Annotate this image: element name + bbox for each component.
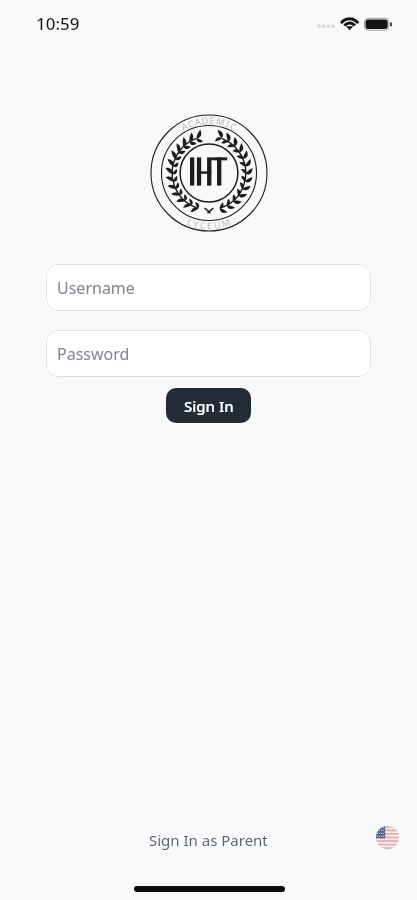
staticText: Sign In as Parent <box>149 830 268 850</box>
button[interactable]: Username <box>46 264 371 311</box>
staticText: 10:59 <box>36 12 80 35</box>
button[interactable]: Password <box>46 330 371 377</box>
button[interactable]: Change language <box>376 826 399 849</box>
button[interactable]: Sign In as Parent <box>139 824 278 856</box>
staticText: Username <box>57 277 135 299</box>
button[interactable]: Sign In <box>166 388 251 423</box>
staticText: Password <box>57 343 130 365</box>
staticText: Sign In <box>184 396 234 416</box>
